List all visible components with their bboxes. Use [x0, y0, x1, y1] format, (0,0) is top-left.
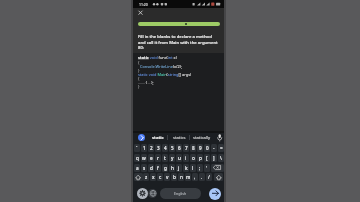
- button[interactable]: d: [148, 164, 154, 172]
- staticText: b: [173, 174, 176, 180]
- staticText: [: [206, 155, 208, 161]
- staticText: 7: [185, 145, 188, 151]
- staticText: g: [164, 165, 167, 171]
- button[interactable]: u: [176, 154, 182, 162]
- button[interactable]: ]: [211, 154, 217, 162]
- button[interactable]: e: [148, 154, 154, 162]
- staticText: y: [171, 155, 174, 161]
- staticText: 6: [178, 145, 181, 151]
- button[interactable]: [138, 134, 145, 141]
- staticText: 5: [171, 145, 174, 151]
- button[interactable]: k: [183, 164, 189, 172]
- button[interactable]: n: [178, 173, 184, 181]
- button[interactable]: statics: [169, 133, 189, 143]
- button[interactable]: s: [141, 164, 147, 172]
- staticText: f: [157, 165, 159, 171]
- button[interactable]: 7: [183, 144, 189, 152]
- staticText: Fill in the blanks to declare a method a…: [138, 34, 223, 50]
- button[interactable]: c: [157, 173, 163, 181]
- button[interactable]: [134, 173, 143, 181]
- button[interactable]: 0: [204, 144, 210, 152]
- staticText: o: [192, 155, 195, 161]
- button[interactable]: \: [218, 154, 224, 162]
- button[interactable]: a: [134, 164, 140, 172]
- button[interactable]: [209, 188, 221, 200]
- staticText: j: [178, 165, 180, 171]
- button[interactable]: j: [176, 164, 182, 172]
- button[interactable]: static: [146, 133, 170, 143]
- staticText: =: [220, 145, 223, 151]
- button[interactable]: v: [164, 173, 170, 181]
- staticText: ]: [213, 155, 215, 161]
- button[interactable]: h: [169, 164, 175, 172]
- button[interactable]: 6: [176, 144, 182, 152]
- staticText: static void func(int x) { Console.WriteL…: [138, 55, 192, 89]
- button[interactable]: g: [162, 164, 168, 172]
- staticText: r: [157, 155, 159, 161]
- button[interactable]: `: [134, 144, 140, 152]
- button[interactable]: q: [134, 154, 140, 162]
- button[interactable]: l: [190, 164, 196, 172]
- button[interactable]: x: [150, 173, 156, 181]
- staticText: statically: [193, 135, 211, 141]
- button[interactable]: z: [143, 173, 149, 181]
- button[interactable]: .: [199, 173, 205, 181]
- button[interactable]: [214, 173, 223, 181]
- button[interactable]: 1: [141, 144, 147, 152]
- button[interactable]: p: [197, 154, 203, 162]
- staticText: 8: [192, 145, 195, 151]
- button[interactable]: 8: [190, 144, 196, 152]
- staticText: `: [136, 145, 138, 151]
- staticText: /: [208, 174, 210, 180]
- button[interactable]: statically: [190, 133, 213, 143]
- button[interactable]: /: [206, 173, 212, 181]
- staticText: ;: [199, 165, 201, 171]
- staticText: n: [180, 174, 183, 180]
- staticText: t: [164, 155, 166, 161]
- staticText: English: [174, 191, 187, 196]
- button[interactable]: =: [218, 144, 224, 152]
- button[interactable]: ': [204, 164, 210, 172]
- button[interactable]: ,: [192, 173, 198, 181]
- staticText: -: [213, 145, 215, 151]
- staticText: a: [136, 165, 139, 171]
- button[interactable]: [137, 188, 148, 199]
- button[interactable]: i: [183, 154, 189, 162]
- button[interactable]: w: [141, 154, 147, 162]
- button[interactable]: [148, 189, 157, 198]
- button[interactable]: [136, 9, 145, 18]
- button[interactable]: b: [171, 173, 177, 181]
- button[interactable]: o: [190, 154, 196, 162]
- staticText: \: [220, 155, 222, 161]
- button[interactable]: f: [155, 164, 161, 172]
- staticText: 2: [150, 145, 153, 151]
- button[interactable]: m: [185, 173, 191, 181]
- staticText: static: [152, 135, 164, 141]
- button[interactable]: [211, 164, 224, 172]
- staticText: h: [171, 165, 174, 171]
- staticText: c: [159, 174, 162, 180]
- button[interactable]: 9: [197, 144, 203, 152]
- staticText: 0: [206, 145, 209, 151]
- button[interactable]: English: [160, 188, 201, 199]
- staticText: d: [150, 165, 153, 171]
- staticText: 3: [157, 145, 160, 151]
- button[interactable]: 5: [169, 144, 175, 152]
- button[interactable]: [: [204, 154, 210, 162]
- button[interactable]: -: [211, 144, 217, 152]
- staticText: ': [206, 165, 208, 171]
- button[interactable]: 3: [155, 144, 161, 152]
- staticText: p: [199, 155, 202, 161]
- staticText: k: [185, 165, 188, 171]
- button[interactable]: 4: [162, 144, 168, 152]
- staticText: 11:20: [139, 2, 148, 7]
- button[interactable]: y: [169, 154, 175, 162]
- staticText: .: [201, 174, 203, 180]
- staticText: i: [185, 155, 187, 161]
- staticText: w: [142, 155, 146, 161]
- staticText: z: [145, 174, 148, 180]
- button[interactable]: 2: [148, 144, 154, 152]
- button[interactable]: r: [155, 154, 161, 162]
- button[interactable]: t: [162, 154, 168, 162]
- button[interactable]: ;: [197, 164, 203, 172]
